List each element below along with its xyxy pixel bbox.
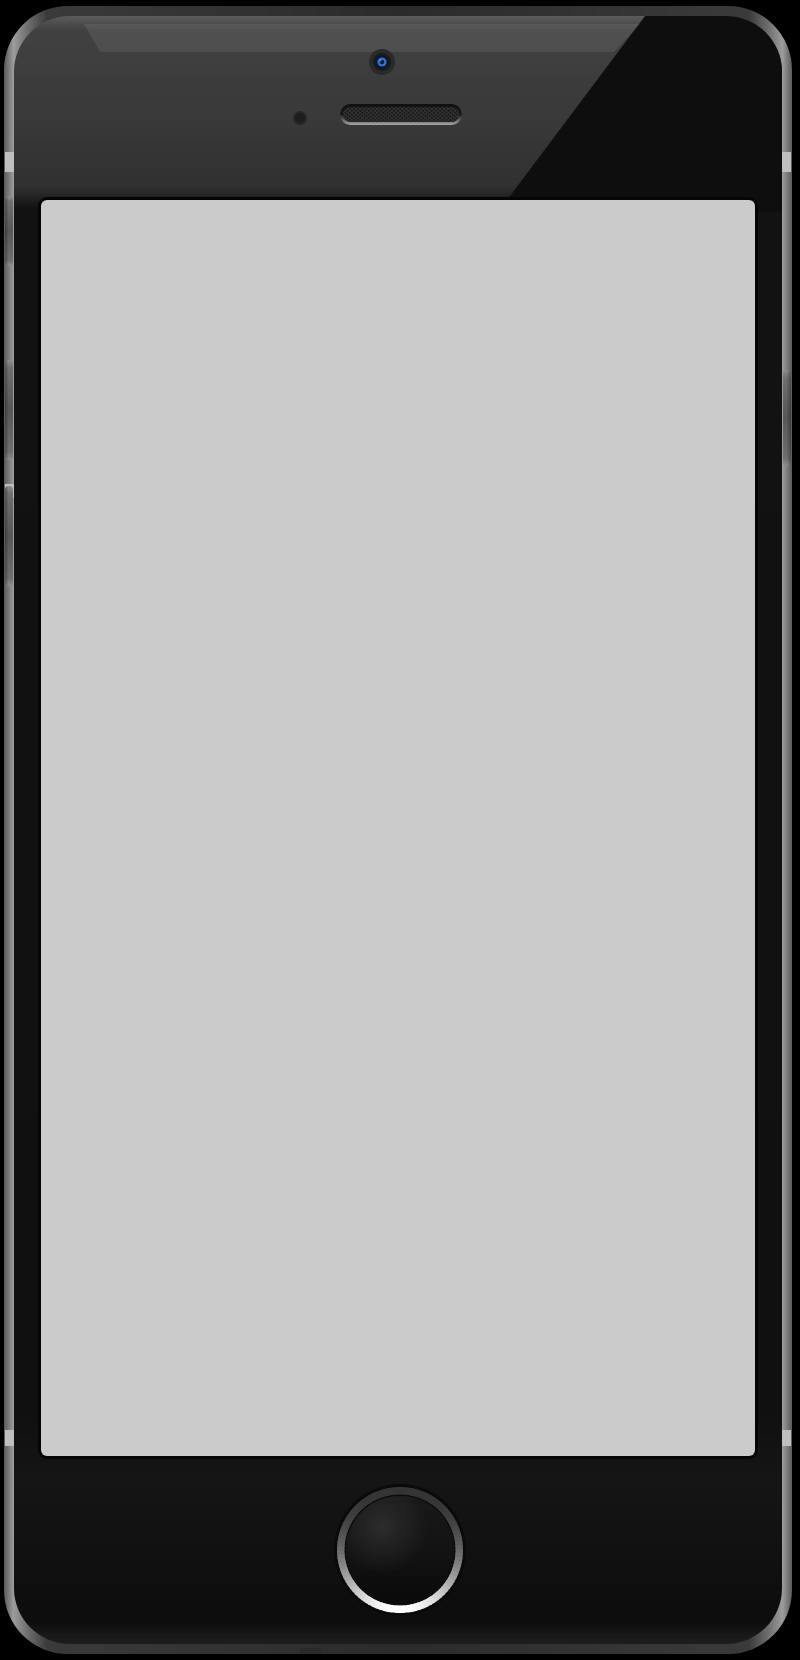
button[interactable]: Phone screen bbox=[0, 0, 800, 1660]
